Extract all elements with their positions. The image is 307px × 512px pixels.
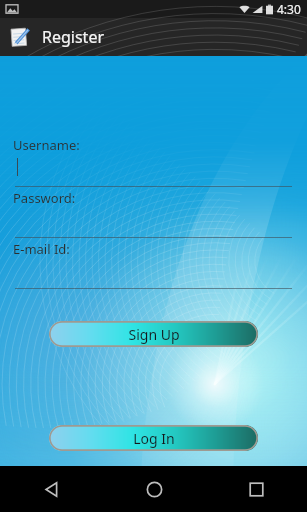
button[interactable]: Sign Up: [49, 321, 258, 347]
button[interactable]: Log In: [49, 425, 258, 451]
staticText: Log In: [133, 429, 175, 448]
staticText: Register: [42, 26, 105, 48]
staticText: E-mail Id:: [13, 240, 70, 258]
button[interactable]: Back: [0, 466, 103, 512]
staticText: 4:30: [277, 1, 301, 17]
staticText: Password:: [13, 189, 76, 207]
button[interactable]: Home: [103, 466, 205, 512]
staticText: Sign Up: [128, 325, 180, 344]
staticText: Username:: [13, 136, 80, 154]
button[interactable]: Recent apps: [205, 466, 307, 512]
